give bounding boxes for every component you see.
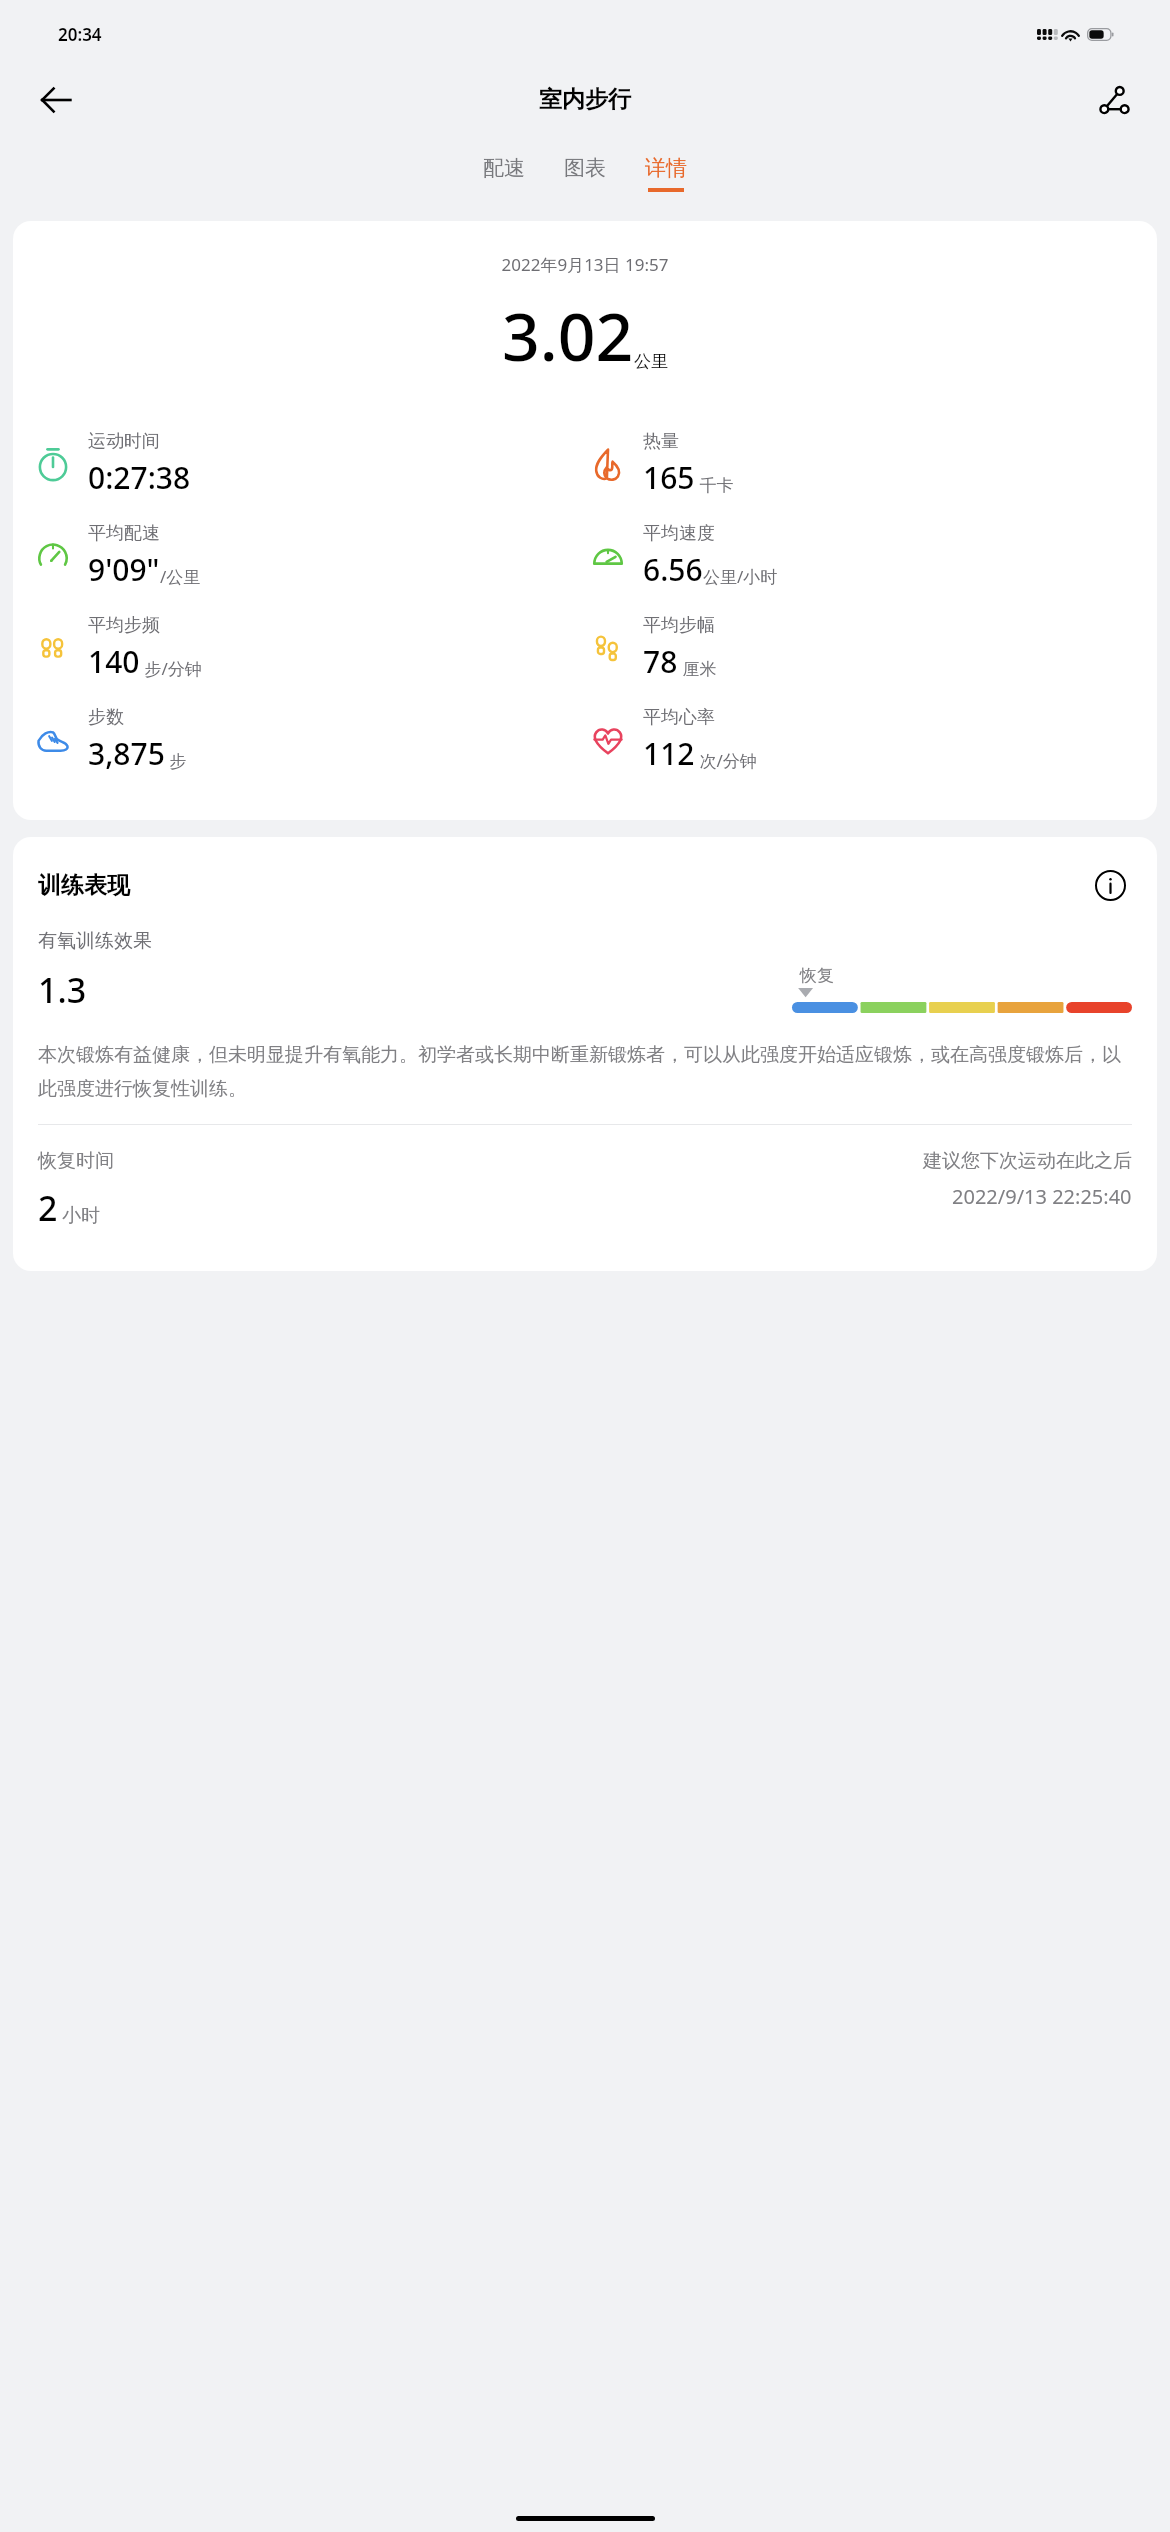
- staticText: 9'09": [88, 549, 160, 590]
- staticText: 厘米: [678, 657, 717, 680]
- button[interactable]: 详情: [641, 153, 691, 194]
- staticText: 运动时间: [88, 430, 160, 453]
- staticText: 1.3: [38, 967, 87, 1013]
- staticText: 公里: [634, 351, 668, 372]
- staticText: 140: [88, 641, 140, 682]
- staticText: 本次锻炼有益健康，但未明显提升有氧能力。初学者或长期中断重新锻炼者，可以从此强度…: [38, 1043, 1132, 1100]
- staticText: 112: [643, 733, 695, 774]
- staticText: 2022/9/13 22:25:40: [952, 1183, 1132, 1210]
- staticText: 室内步行: [539, 85, 631, 114]
- staticText: 热量: [643, 430, 679, 453]
- staticText: 2: [38, 1185, 58, 1231]
- staticText: 小时: [62, 1204, 100, 1228]
- button[interactable]: Back: [26, 70, 86, 130]
- staticText: 平均速度: [643, 522, 715, 545]
- button[interactable]: 配速: [479, 153, 529, 194]
- staticText: 平均步频: [88, 614, 160, 637]
- staticText: 3.02: [502, 290, 634, 380]
- staticText: /公里: [160, 565, 201, 588]
- staticText: 千卡: [695, 473, 734, 496]
- staticText: 步: [165, 749, 187, 772]
- staticText: 0:27:38: [88, 457, 191, 498]
- staticText: 步/分钟: [140, 657, 202, 680]
- staticText: 详情: [645, 155, 687, 181]
- staticText: 训练表现: [38, 871, 130, 900]
- staticText: 6.56: [643, 549, 703, 590]
- button[interactable]: Share: [1084, 70, 1144, 130]
- staticText: 建议您下次运动在此之后: [923, 1149, 1132, 1173]
- staticText: 2022年9月13日 19:57: [13, 253, 1157, 276]
- staticText: 步数: [88, 706, 124, 729]
- button[interactable]: Info: [1088, 863, 1132, 907]
- staticText: 78: [643, 641, 678, 682]
- staticText: 公里/小时: [703, 565, 778, 588]
- staticText: 图表: [564, 155, 606, 181]
- staticText: 165: [643, 457, 695, 498]
- staticText: 平均配速: [88, 522, 160, 545]
- staticText: 平均步幅: [643, 614, 715, 637]
- staticText: 配速: [483, 155, 525, 181]
- staticText: 平均心率: [643, 706, 715, 729]
- staticText: 恢复时间: [38, 1149, 114, 1173]
- staticText: 20:34: [58, 23, 102, 46]
- staticText: 3,875: [88, 733, 165, 774]
- staticText: 有氧训练效果: [38, 929, 152, 953]
- staticText: 恢复: [800, 965, 834, 986]
- staticText: 次/分钟: [695, 749, 757, 772]
- button[interactable]: 图表: [560, 153, 610, 194]
